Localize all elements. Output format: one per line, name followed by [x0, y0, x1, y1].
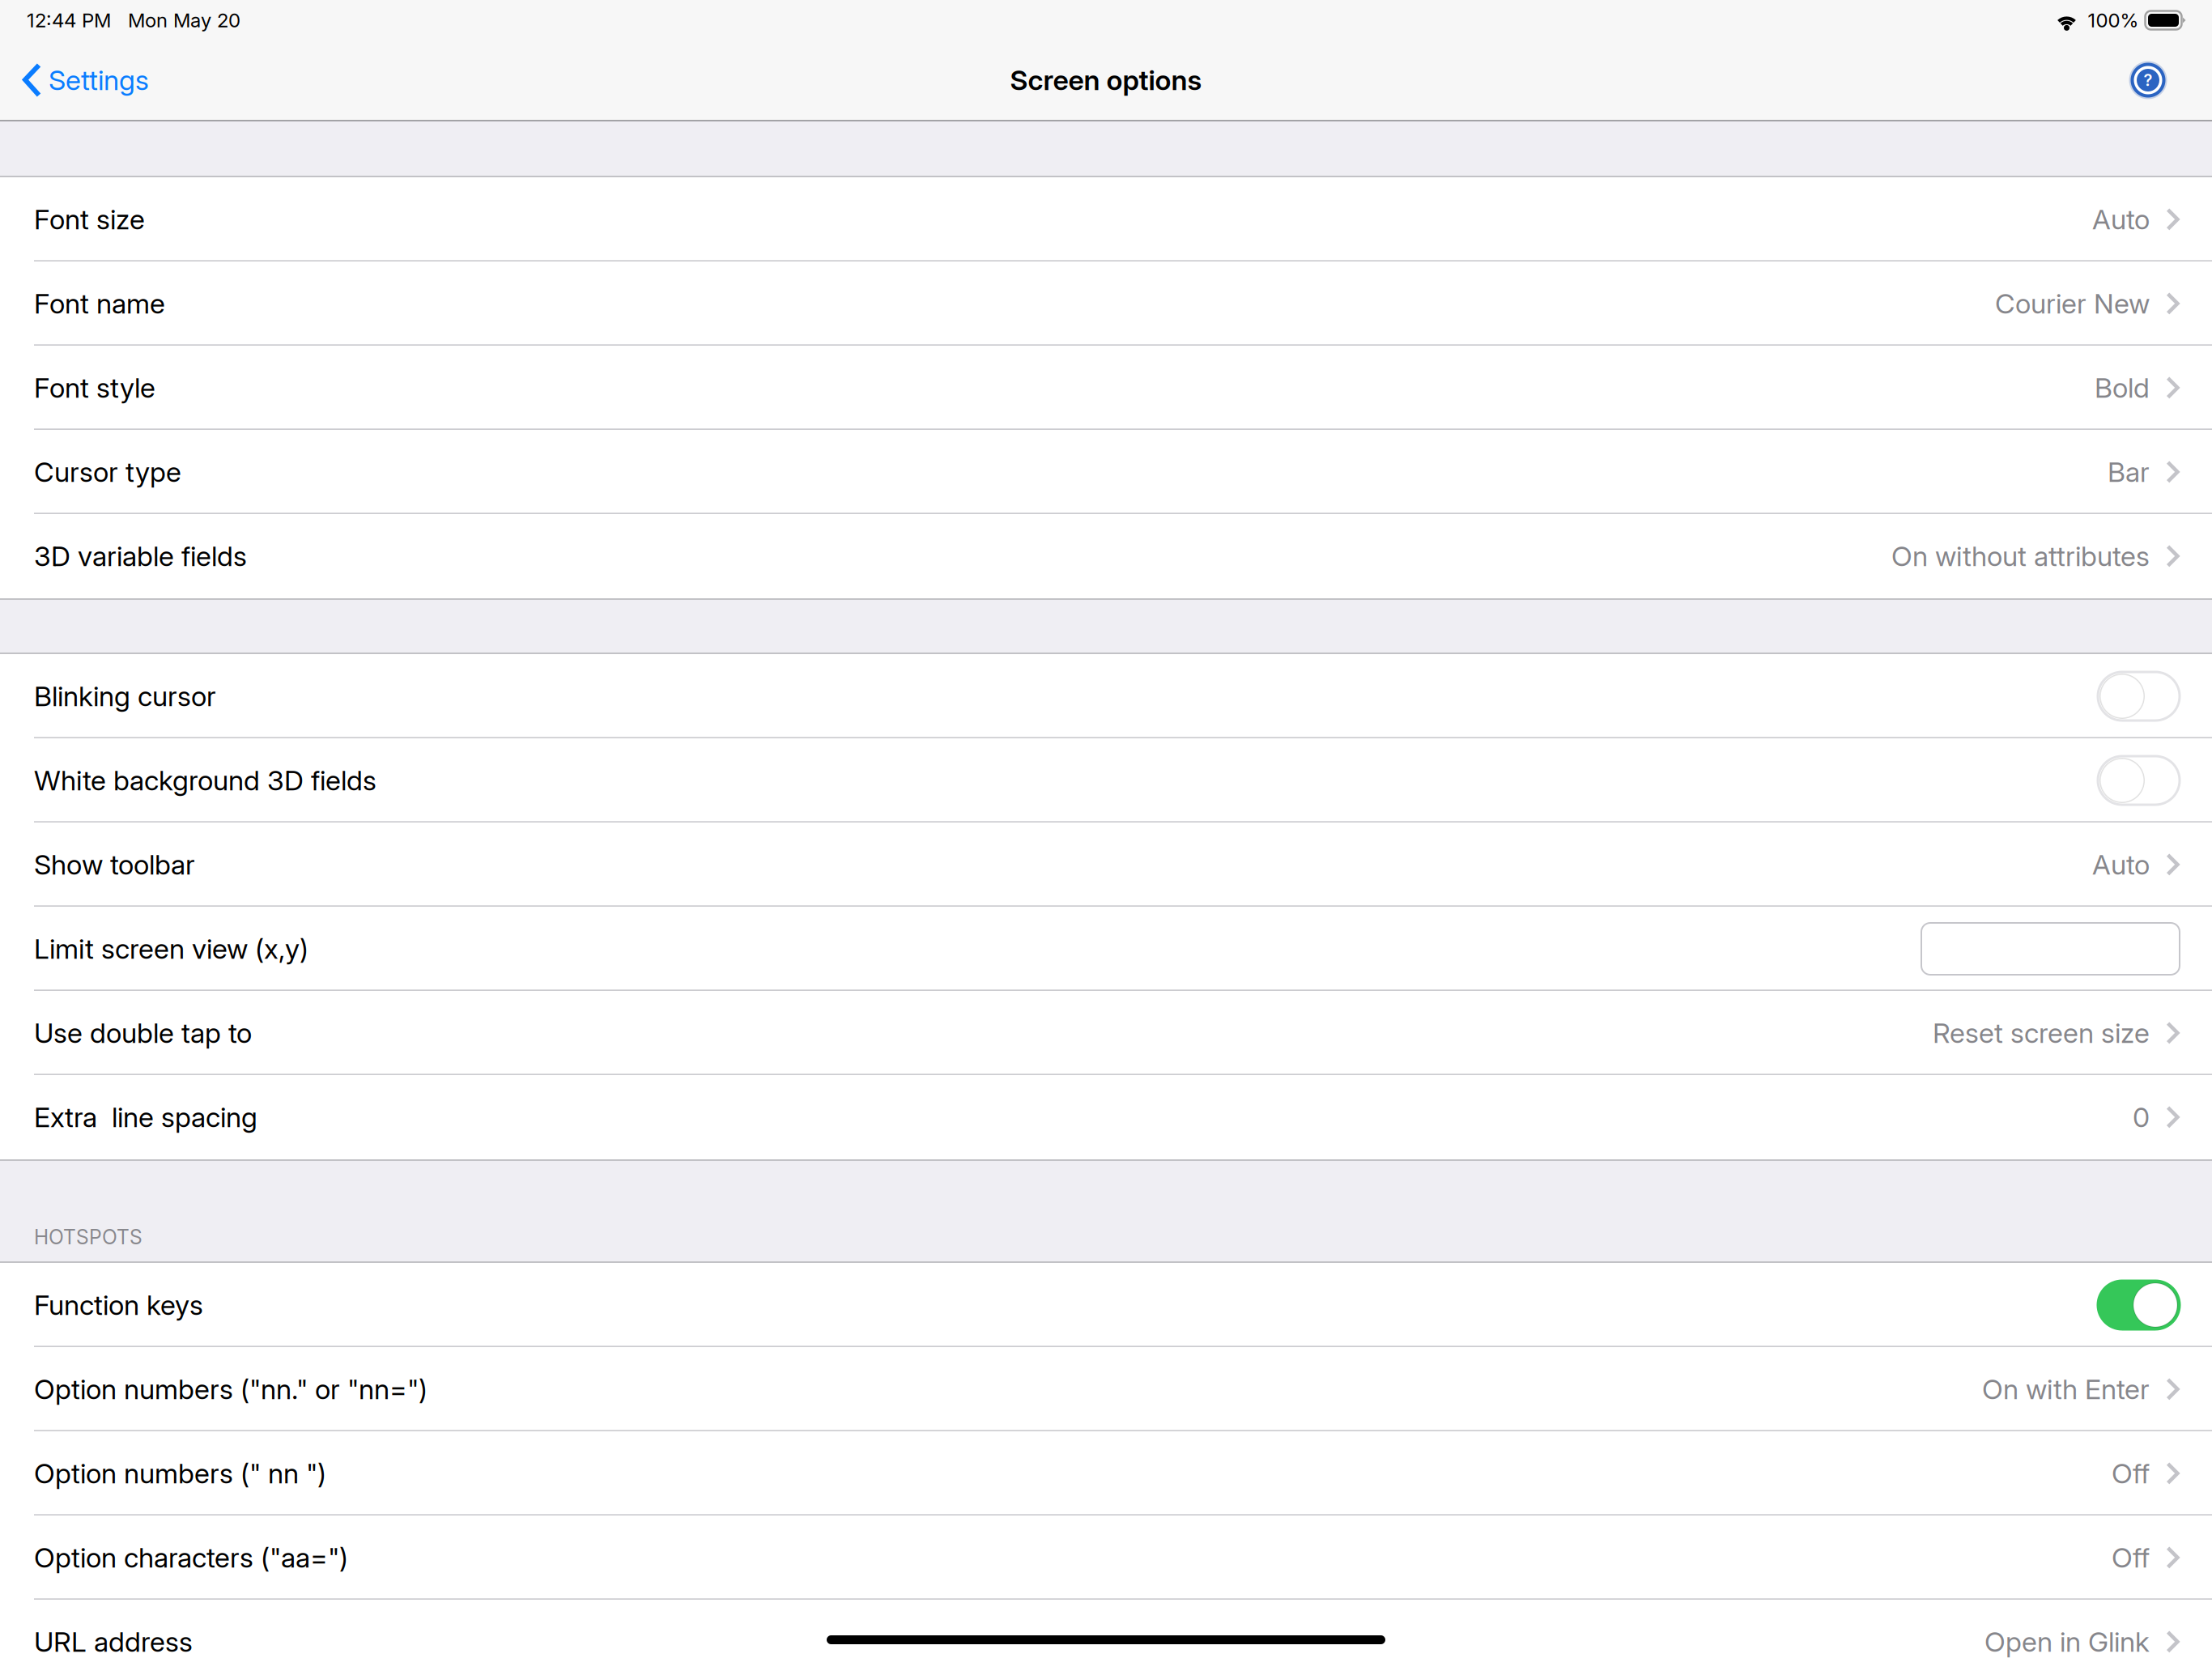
staticText: Show toolbar	[34, 848, 195, 881]
staticText: HOTSPOTS	[34, 1225, 143, 1249]
button[interactable]: Option numbers (" nn ")	[0, 1431, 2212, 1516]
button[interactable]: Font name	[0, 261, 2212, 346]
button[interactable]: Extra line spacing	[0, 1075, 2212, 1159]
button[interactable]: White background 3D fields	[0, 738, 2212, 823]
staticText: Auto	[2092, 203, 2150, 236]
staticText: On without attributes	[1891, 539, 2150, 573]
staticText: Option numbers ("nn." or "nn=")	[34, 1373, 428, 1406]
staticText: Use double tap to	[34, 1016, 252, 1050]
staticText: Option numbers (" nn ")	[34, 1457, 326, 1490]
button[interactable]: Use double tap to	[0, 991, 2212, 1075]
button[interactable]: Show toolbar	[0, 823, 2212, 907]
staticText: 100%	[2088, 9, 2139, 32]
button[interactable]: Limit screen view (x,y)	[0, 907, 2212, 991]
button[interactable]: Font size	[0, 177, 2212, 261]
staticText: Courier New	[1995, 287, 2150, 320]
staticText: Settings	[49, 63, 149, 97]
staticText: Font name	[34, 287, 165, 320]
staticText: Auto	[2092, 848, 2150, 881]
button[interactable]: Option numbers ("nn." or "nn=")	[0, 1347, 2212, 1431]
staticText: Cursor type	[34, 455, 181, 489]
staticText: Off	[2112, 1541, 2150, 1574]
staticText: On with Enter	[1982, 1373, 2150, 1406]
staticText: Limit screen view (x,y)	[34, 932, 308, 965]
staticText: Option characters ("aa=")	[34, 1541, 348, 1574]
staticText: Bar	[2108, 455, 2150, 489]
staticText: Blinking cursor	[34, 680, 216, 713]
staticText: Font size	[34, 203, 145, 236]
button[interactable]: Font style	[0, 346, 2212, 430]
staticText: Extra line spacing	[34, 1101, 257, 1134]
staticText: Bold	[2095, 371, 2150, 404]
button[interactable]: Function keys	[0, 1263, 2212, 1347]
staticText: 12:44 PM Mon May 20	[27, 9, 240, 32]
button[interactable]: Help	[2116, 48, 2180, 113]
button[interactable]: 3D variable fields	[0, 514, 2212, 598]
staticText: 0	[2133, 1101, 2150, 1134]
staticText: Font style	[34, 371, 155, 404]
button[interactable]: Option characters ("aa=")	[0, 1516, 2212, 1600]
staticText: Screen options	[1010, 63, 1202, 97]
staticText: Function keys	[34, 1288, 203, 1322]
staticText: 3D variable fields	[34, 539, 247, 573]
button[interactable]: Cursor type	[0, 430, 2212, 514]
staticText: ?	[2144, 70, 2152, 90]
staticText: Off	[2112, 1457, 2150, 1490]
button[interactable]: URL address	[0, 1600, 2212, 1658]
staticText: White background 3D fields	[34, 764, 376, 797]
staticText: Reset screen size	[1933, 1016, 2150, 1050]
staticText: URL address	[34, 1625, 193, 1658]
button[interactable]: Settings	[0, 40, 164, 120]
staticText: Open in Glink	[1984, 1625, 2150, 1658]
button[interactable]: Blinking cursor	[0, 654, 2212, 738]
